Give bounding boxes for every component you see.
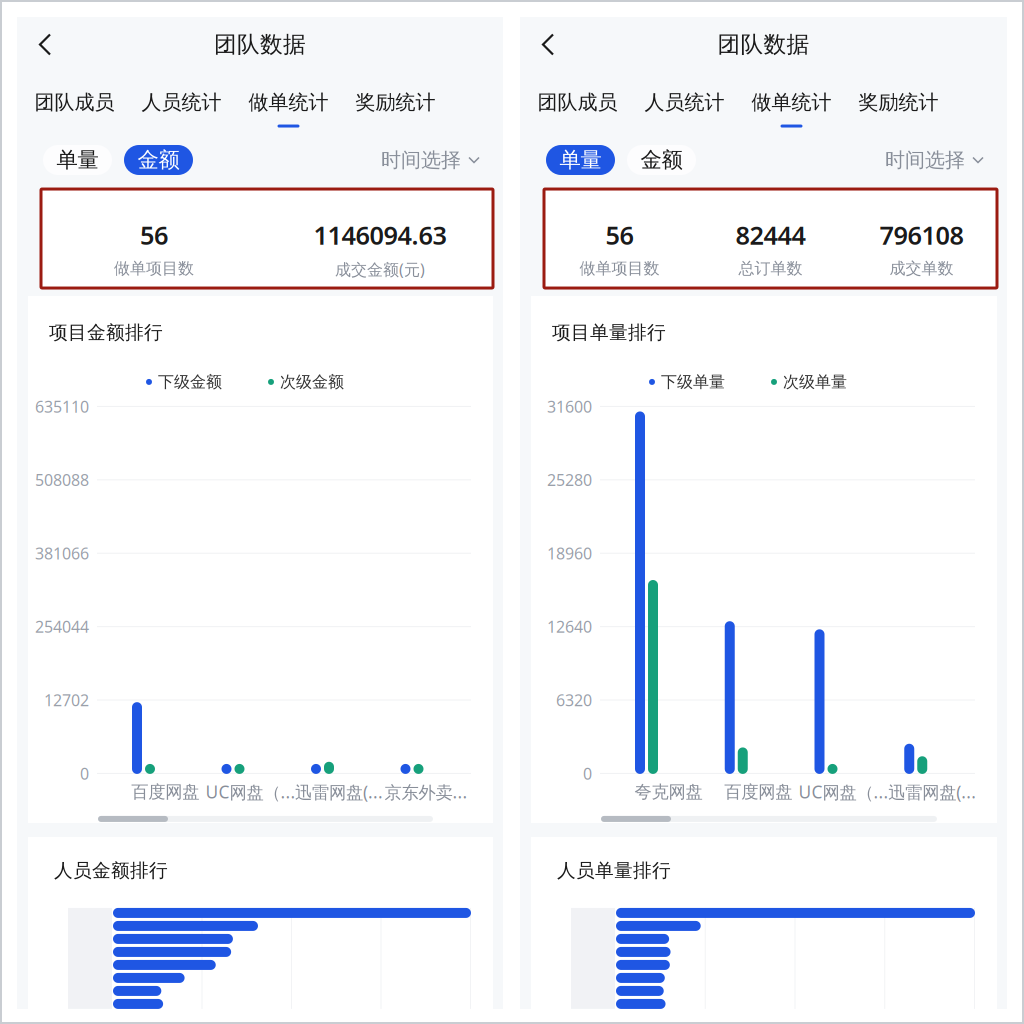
button[interactable]: 奖励统计 [845, 72, 952, 131]
staticText: 人员统计 [644, 90, 724, 115]
staticText: 金额 [137, 147, 179, 173]
staticText: 金额 [640, 147, 682, 173]
staticText: 团队成员 [34, 90, 114, 115]
staticText: 1146094.63 [313, 218, 446, 252]
staticText: 次级单量 [783, 372, 847, 392]
button[interactable]: Back [17, 17, 73, 72]
button[interactable]: 人员统计 [631, 72, 738, 131]
staticText: 18960 [547, 543, 592, 564]
button[interactable]: 单量 [43, 145, 112, 175]
staticText: 团队成员 [537, 90, 617, 115]
staticText: 夸克网盘 [634, 781, 702, 803]
button[interactable]: 金额 [124, 145, 193, 175]
button[interactable]: 时间选择 [381, 145, 480, 175]
staticText: 0 [583, 763, 592, 784]
staticText: 254044 [35, 616, 89, 637]
staticText: 团队数据 [717, 31, 809, 58]
staticText: 82444 [735, 218, 805, 252]
staticText: 京东外卖（区 [384, 780, 483, 803]
staticText: 项目单量排行 [552, 321, 666, 344]
staticText: 25280 [547, 469, 592, 490]
button[interactable]: 金额 [627, 145, 696, 175]
staticText: 56 [605, 218, 633, 252]
button[interactable]: 做单统计 [738, 72, 845, 131]
staticText: 381066 [35, 543, 89, 564]
staticText: 做单项目数 [579, 259, 659, 278]
staticText: 总订单数 [738, 259, 802, 278]
staticText: 单量 [559, 147, 601, 173]
staticText: 635110 [35, 396, 89, 417]
staticText: 796108 [879, 218, 963, 252]
button[interactable]: 奖励统计 [342, 72, 449, 131]
staticText: 单量 [56, 147, 98, 173]
staticText: 项目金额排行 [49, 321, 163, 344]
staticText: 做单统计 [751, 90, 831, 115]
staticText: 时间选择 [381, 148, 461, 172]
staticText: UC网盘（拉... [798, 780, 897, 803]
button[interactable]: Back [520, 17, 576, 72]
staticText: 人员统计 [141, 90, 221, 115]
staticText: 团队数据 [214, 31, 306, 58]
staticText: 次级金额 [280, 372, 344, 392]
staticText: 人员金额排行 [54, 859, 168, 882]
button[interactable]: 团队成员 [21, 72, 128, 131]
staticText: 百度网盘 [131, 781, 199, 803]
staticText: UC网盘（拉... [205, 780, 304, 803]
button[interactable]: 单量 [546, 145, 615, 175]
staticText: 12702 [44, 689, 89, 711]
staticText: 508088 [35, 469, 89, 490]
staticText: 0 [80, 763, 89, 784]
staticText: 做单统计 [248, 90, 328, 115]
staticText: 31600 [547, 396, 592, 417]
staticText: 奖励统计 [858, 90, 938, 115]
button[interactable]: 时间选择 [885, 145, 984, 175]
button[interactable]: 团队成员 [524, 72, 631, 131]
staticText: 迅雷网盘(拉... [888, 780, 987, 804]
staticText: 成交金额(元) [335, 259, 425, 280]
staticText: 12640 [547, 616, 592, 637]
staticText: 迅雷网盘(拉... [295, 780, 393, 804]
staticText: 奖励统计 [355, 90, 435, 115]
staticText: 人员单量排行 [557, 859, 671, 882]
staticText: 56 [140, 218, 168, 252]
staticText: 6320 [556, 689, 592, 711]
staticText: 时间选择 [885, 148, 965, 172]
button[interactable]: 人员统计 [128, 72, 235, 131]
staticText: 百度网盘 [724, 781, 792, 803]
button[interactable]: 做单统计 [235, 72, 342, 131]
staticText: 下级金额 [158, 372, 222, 392]
staticText: 成交单数 [889, 259, 953, 278]
staticText: 下级单量 [661, 372, 725, 392]
staticText: 做单项目数 [114, 259, 194, 278]
